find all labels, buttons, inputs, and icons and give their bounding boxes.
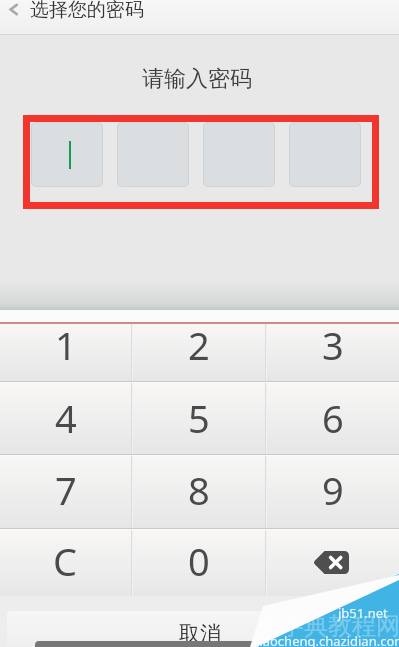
staticText: C	[53, 535, 78, 587]
button[interactable]: Back	[0, 0, 26, 19]
staticText: 4	[55, 392, 77, 444]
button[interactable]: C	[0, 530, 131, 599]
staticText: jb51.net	[338, 604, 388, 622]
button[interactable]: Delete	[267, 530, 399, 599]
staticText: 取消	[179, 621, 221, 647]
staticText: 7	[55, 464, 77, 516]
button[interactable]: 3	[267, 324, 399, 381]
button[interactable]: 9	[267, 456, 399, 528]
button[interactable]: 4	[0, 383, 131, 454]
staticText: 2	[188, 319, 210, 371]
staticText: 选择您的密码	[30, 0, 144, 22]
button[interactable]	[32, 123, 102, 186]
staticText: 9	[322, 464, 344, 516]
button[interactable]: 取消	[7, 611, 392, 647]
staticText: 8	[188, 464, 210, 516]
button[interactable]: 8	[133, 456, 265, 528]
button[interactable]: 2	[133, 324, 265, 381]
button[interactable]: 6	[267, 383, 399, 454]
button[interactable]: 0	[133, 530, 265, 599]
staticText: 6	[322, 392, 344, 444]
staticText: 0	[188, 535, 210, 587]
staticText: 5	[188, 392, 210, 444]
staticText: 查字典教程网	[256, 611, 399, 641]
button[interactable]: 5	[133, 383, 265, 454]
staticText: 1	[55, 319, 77, 371]
staticText: 请输入密码	[142, 65, 252, 93]
button[interactable]: 7	[0, 456, 131, 528]
staticText: jiaocheng.chazidian.com	[256, 632, 399, 647]
staticText: 3	[322, 319, 344, 371]
button[interactable]: 1	[0, 324, 131, 381]
